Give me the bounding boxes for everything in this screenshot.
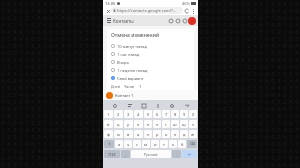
button[interactable]: 9	[180, 110, 188, 118]
button[interactable]: р	[153, 130, 161, 138]
button[interactable]: Action	[167, 17, 174, 24]
button[interactable]: Menu	[105, 17, 112, 24]
button[interactable]: т	[160, 140, 168, 148]
button[interactable]: Вчера	[111, 58, 190, 66]
button[interactable]: Keyboard tool 4	[168, 102, 175, 109]
button[interactable]: https://contacts.google.com/?...	[111, 7, 183, 14]
button[interactable]: й	[104, 120, 113, 128]
button[interactable]: 10 минут назад	[111, 42, 190, 50]
button[interactable]: 3	[124, 110, 133, 118]
button[interactable]: ь	[169, 140, 177, 148]
button[interactable]: 8	[171, 110, 179, 118]
button[interactable]: и	[151, 140, 159, 148]
staticText: 8	[156, 112, 162, 119]
button[interactable]: Контакт 1	[103, 90, 198, 100]
button[interactable]: Action	[174, 17, 181, 24]
button[interactable]: Shift	[104, 140, 114, 148]
button[interactable]: Keyboard tool 2	[140, 102, 147, 109]
button[interactable]: г	[162, 120, 170, 128]
button[interactable]: ы	[114, 130, 123, 138]
staticText: 7	[114, 84, 120, 91]
button[interactable]: Русский	[131, 150, 171, 158]
button[interactable]: Enter	[182, 150, 197, 158]
button[interactable]: Close tab	[105, 8, 111, 14]
staticText: 0	[132, 126, 138, 133]
button[interactable]: б	[178, 140, 186, 148]
button[interactable]: Keyboard tool 0	[111, 102, 118, 109]
button[interactable]: д	[180, 130, 188, 138]
button[interactable]: а	[134, 130, 143, 138]
button[interactable]: о	[162, 130, 170, 138]
staticText: 4	[270, 21, 276, 28]
staticText: 4	[240, 154, 246, 161]
button[interactable]: 2	[114, 110, 123, 118]
button[interactable]: з	[189, 120, 197, 128]
staticText: 7	[132, 119, 138, 126]
staticText: 6	[102, 14, 108, 21]
button[interactable]: Account	[188, 17, 196, 25]
button[interactable]: Action	[181, 17, 188, 24]
button[interactable]: м	[142, 140, 150, 148]
button[interactable]: 4	[134, 110, 143, 118]
button[interactable]: Symbols	[104, 150, 120, 158]
button[interactable]: я	[115, 140, 123, 148]
button[interactable]: 5	[144, 110, 152, 118]
button[interactable]: 6	[153, 110, 161, 118]
button[interactable]: Reload	[183, 7, 190, 14]
staticText: 8	[246, 105, 252, 112]
button[interactable]: в	[124, 130, 133, 138]
button[interactable]: 0	[189, 110, 197, 118]
button[interactable]: 7	[162, 110, 170, 118]
button[interactable]: Keyboard tool 1	[126, 102, 133, 109]
button[interactable]: Comma	[121, 150, 130, 158]
button[interactable]: ж	[189, 130, 197, 138]
button[interactable]: п	[144, 130, 152, 138]
button[interactable]: Backspace	[187, 140, 197, 148]
staticText: 4	[210, 161, 216, 168]
button[interactable]: ч	[124, 140, 132, 148]
button[interactable]: к	[134, 120, 143, 128]
button[interactable]: ф	[104, 130, 113, 138]
button[interactable]: 1 час назад	[111, 50, 190, 58]
button[interactable]: с	[133, 140, 141, 148]
staticText: 9	[162, 7, 168, 14]
button[interactable]: Keyboard tool 3	[154, 102, 161, 109]
staticText: 2	[12, 84, 18, 91]
button[interactable]: 1	[104, 110, 113, 118]
button[interactable]: у	[124, 120, 133, 128]
button[interactable]: Keyboard tool 5	[183, 102, 190, 109]
staticText: 9	[126, 98, 132, 105]
staticText: 4	[198, 112, 204, 119]
staticText: р	[156, 132, 159, 137]
button[interactable]: н	[153, 120, 161, 128]
staticText: 5	[150, 154, 156, 161]
button[interactable]: Свой вариант	[111, 74, 190, 82]
button[interactable]: More options	[190, 8, 196, 14]
staticText: 0	[126, 154, 132, 161]
button[interactable]: 1 неделю назад	[111, 66, 190, 74]
button[interactable]: ш	[171, 120, 179, 128]
button[interactable]: е	[144, 120, 152, 128]
button[interactable]: л	[171, 130, 179, 138]
button[interactable]: ц	[114, 120, 123, 128]
button[interactable]: щ	[180, 120, 188, 128]
staticText: 8	[186, 7, 192, 14]
